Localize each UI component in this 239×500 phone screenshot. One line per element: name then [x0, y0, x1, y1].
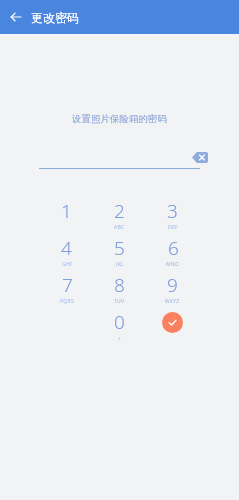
- button[interactable]: 7: [40, 272, 93, 304]
- staticText: 2: [114, 198, 125, 224]
- button[interactable]: Backspace: [189, 146, 211, 168]
- button[interactable]: 4: [40, 235, 93, 267]
- button[interactable]: 8: [93, 272, 146, 304]
- staticText: PQRS: [60, 298, 74, 304]
- staticText: 9: [167, 272, 178, 298]
- staticText: JKL: [116, 261, 124, 267]
- staticText: 设置照片保险箱的密码: [0, 113, 239, 125]
- button[interactable]: Confirm: [162, 312, 183, 333]
- button[interactable]: 0: [93, 309, 146, 341]
- staticText: 3: [167, 198, 178, 224]
- staticText: 4: [61, 235, 72, 261]
- staticText: 0: [114, 309, 125, 335]
- staticText: 更改密码: [31, 10, 79, 25]
- staticText: TUV: [114, 298, 125, 304]
- staticText: GHI: [62, 261, 72, 267]
- staticText: ABC: [114, 224, 125, 230]
- button[interactable]: 2: [93, 198, 146, 230]
- staticText: 7: [62, 272, 73, 298]
- staticText: DEF: [168, 224, 178, 230]
- button[interactable]: 1: [40, 198, 93, 230]
- staticText: WXYZ: [165, 298, 180, 304]
- staticText: 5: [114, 235, 125, 261]
- button[interactable]: 9: [146, 272, 199, 304]
- button[interactable]: 3: [146, 198, 199, 230]
- button[interactable]: 5: [93, 235, 146, 267]
- button[interactable]: Back: [1, 2, 31, 32]
- staticText: 8: [114, 272, 125, 298]
- button[interactable]: 6: [146, 235, 199, 267]
- staticText: MNO: [166, 261, 180, 267]
- staticText: 6: [168, 235, 179, 261]
- staticText: 1: [61, 198, 72, 224]
- staticText: +: [118, 336, 121, 341]
